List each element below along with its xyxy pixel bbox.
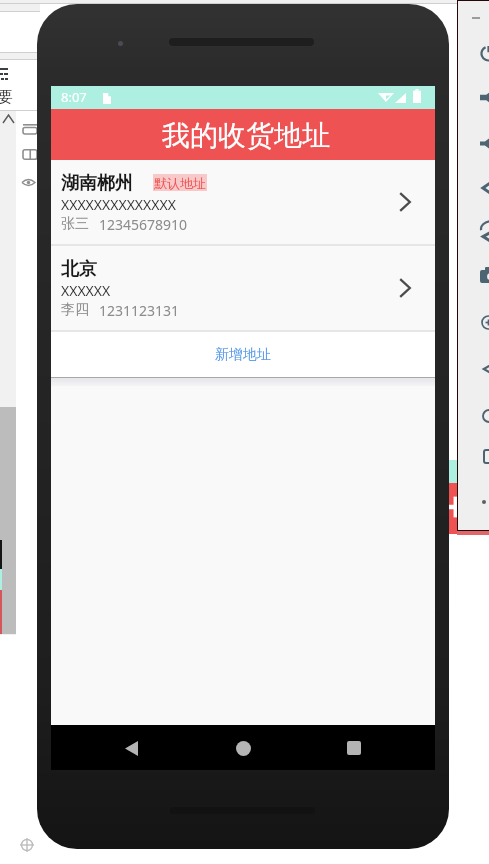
staticText: XXXXXXXXXXXXXX [61, 195, 176, 214]
staticText: XXXXXX [61, 281, 111, 300]
staticText: 湖南郴州 [61, 172, 133, 195]
staticText: 新增地址 [215, 346, 271, 364]
button[interactable]: 北京 [51, 246, 435, 330]
staticText: 李四 [61, 301, 89, 319]
staticText: 12345678910 [99, 215, 188, 234]
staticText: 默认地址 [154, 175, 206, 191]
button[interactable]: Home [227, 732, 259, 764]
staticText: 8:07 [61, 88, 87, 106]
other: Edit address [399, 192, 411, 212]
button[interactable]: Back [115, 732, 147, 764]
staticText: 北京 [61, 258, 97, 281]
other: Edit address [399, 278, 411, 298]
button[interactable]: 湖南郴州 [51, 160, 435, 244]
staticText: 要 [0, 88, 13, 107]
staticText: 我的收货地址 [162, 118, 330, 153]
staticText: 1231123131 [99, 301, 180, 320]
button[interactable]: Recent apps [338, 732, 370, 764]
staticText: 张三 [61, 215, 89, 233]
button[interactable]: 新增地址 [51, 332, 435, 377]
